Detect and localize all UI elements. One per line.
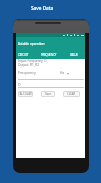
staticText: Save <box>45 92 52 96</box>
staticText: Astable operation <box>18 42 45 46</box>
staticText: Frequency <box>18 70 36 75</box>
staticText: Save Data <box>31 5 54 11</box>
staticText: Hz <box>60 70 64 74</box>
button[interactable]: FREQUENCY <box>34 51 63 58</box>
staticText: CIRCUIT <box>18 53 29 57</box>
staticText: Input: Frequency, D <box>18 59 47 63</box>
staticText: VALUE <box>70 53 79 57</box>
button[interactable]: CLEAR <box>63 91 80 97</box>
staticText: CLEAR <box>67 92 76 96</box>
button[interactable]: CIRCUIT <box>16 51 31 58</box>
button[interactable]: Save <box>41 91 55 97</box>
button[interactable]: Unit dropdown <box>67 73 69 75</box>
staticText: CALCULATE <box>18 92 33 96</box>
staticText: FREQUENCY <box>41 53 57 57</box>
button[interactable]: CALCULATE <box>18 91 33 97</box>
button[interactable]: VALUE <box>64 51 85 58</box>
staticText: D <box>18 82 21 87</box>
staticText: Output: R1, R2 <box>18 63 40 67</box>
